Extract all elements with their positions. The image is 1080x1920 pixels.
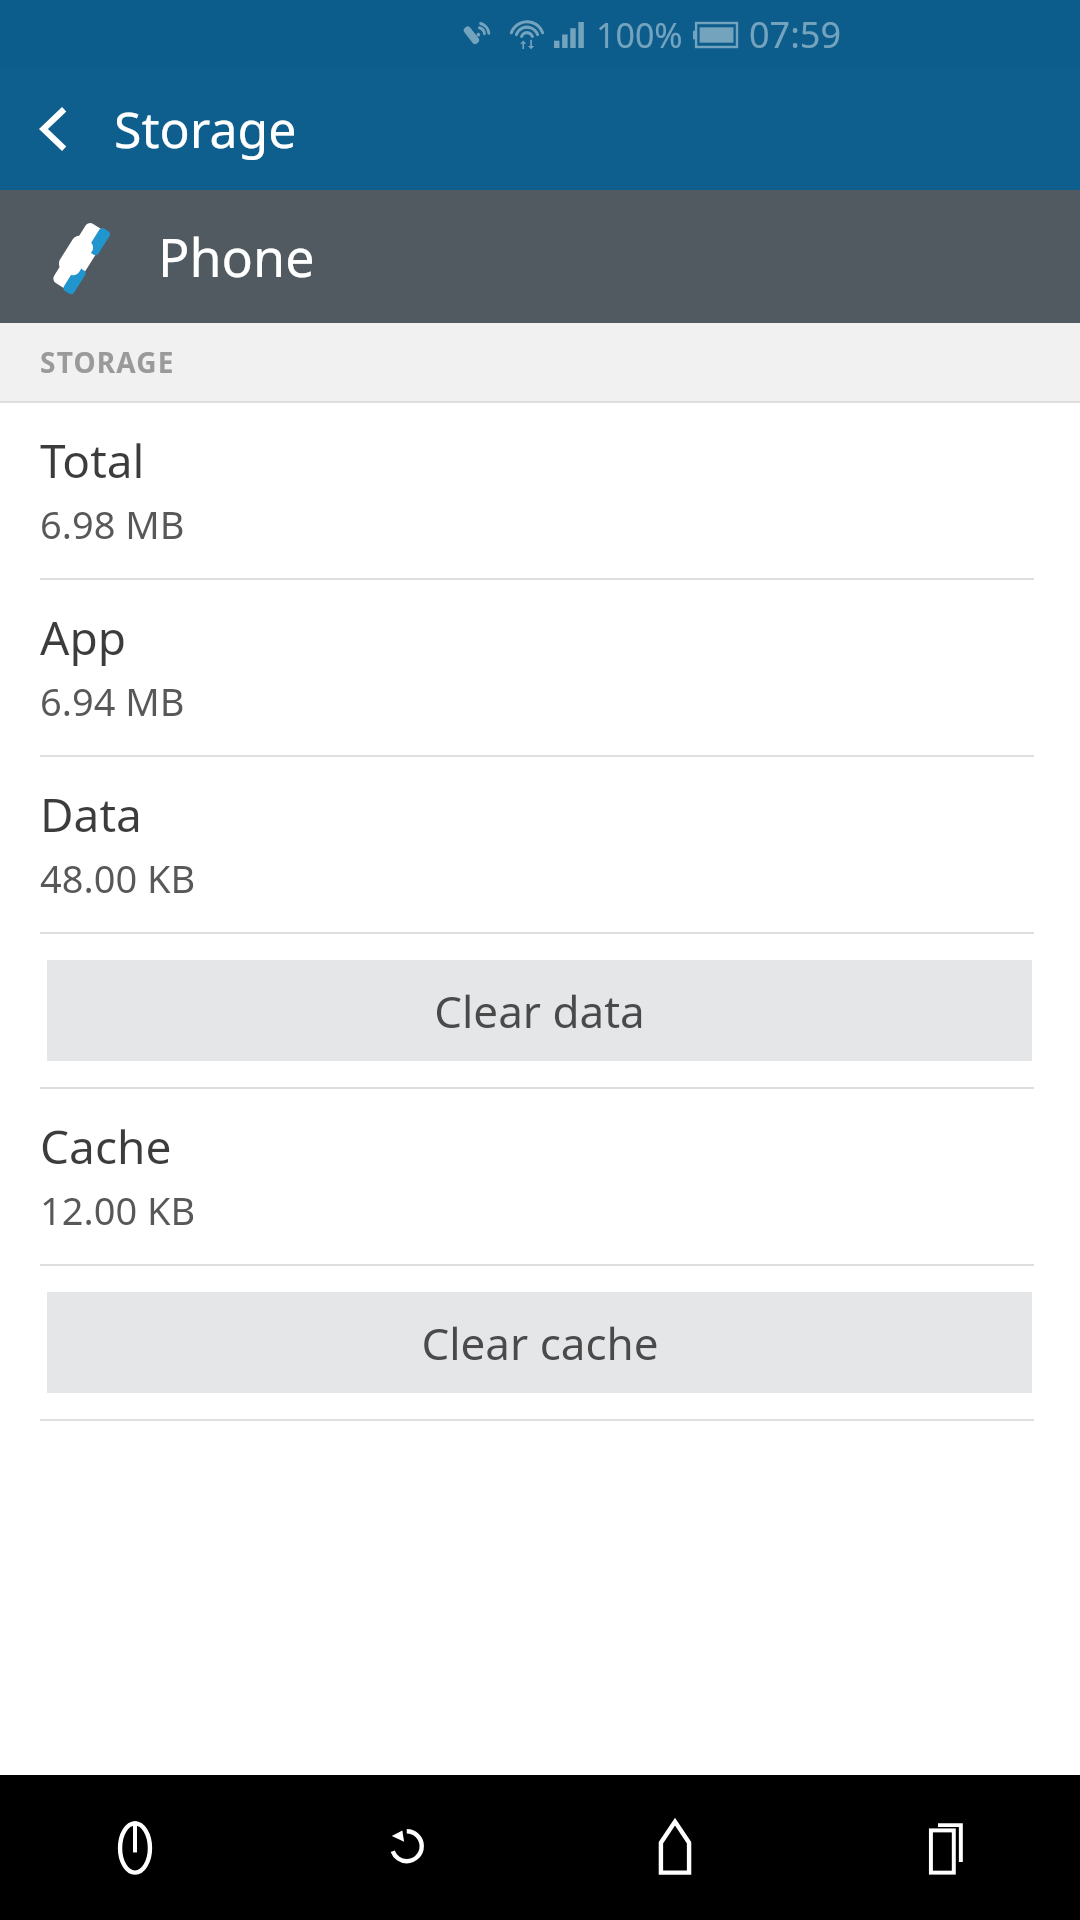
staticText: Cache <box>40 1115 172 1178</box>
button[interactable]: Cache <box>0 1089 1080 1264</box>
staticText: Data <box>40 783 142 846</box>
staticText: STORAGE <box>40 343 175 381</box>
button[interactable]: App <box>0 580 1080 755</box>
staticText: 100% <box>596 12 683 58</box>
staticText: Clear data <box>434 981 645 1041</box>
staticText: 07:59 <box>749 10 842 59</box>
button[interactable]: Clear data <box>47 960 1032 1061</box>
button[interactable]: Total <box>0 403 1080 578</box>
button[interactable]: Recent apps <box>810 1775 1080 1920</box>
staticText: Phone <box>158 221 315 292</box>
button[interactable]: Home <box>540 1775 810 1920</box>
staticText: Storage <box>114 95 297 163</box>
staticText: Clear cache <box>421 1313 659 1373</box>
staticText: 6.94 MB <box>40 675 185 727</box>
staticText: 48.00 KB <box>40 852 196 904</box>
staticText: Total <box>40 429 145 492</box>
staticText: 12.00 KB <box>40 1184 196 1236</box>
button[interactable]: Back <box>270 1775 540 1920</box>
staticText: App <box>40 606 126 669</box>
button[interactable]: Power <box>0 1775 270 1920</box>
button[interactable]: Clear cache <box>47 1292 1032 1393</box>
button[interactable]: Data <box>0 757 1080 932</box>
button[interactable]: Back <box>14 89 94 169</box>
staticText: 6.98 MB <box>40 498 185 550</box>
